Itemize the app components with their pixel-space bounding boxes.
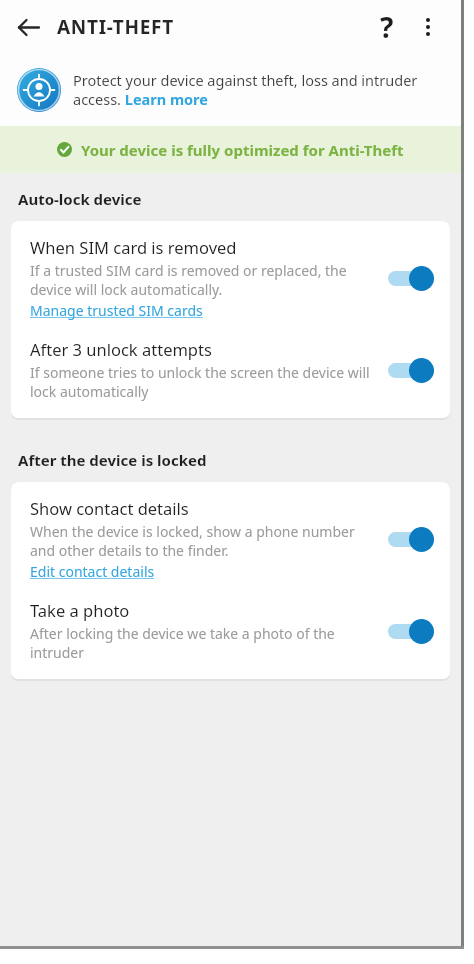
staticText: After the device is locked — [18, 450, 207, 470]
button[interactable]: Toggle on — [384, 521, 438, 557]
staticText: If a trusted SIM card is removed or repl… — [30, 261, 376, 299]
button[interactable]: Toggle on — [384, 352, 438, 388]
button[interactable]: More options — [408, 7, 448, 47]
staticText: When SIM card is removed — [30, 236, 237, 258]
button[interactable]: After 3 unlock attempts — [11, 329, 450, 418]
staticText: Take a photo — [30, 599, 130, 621]
button[interactable]: Help — [365, 5, 409, 49]
staticText: When the device is locked, show a phone … — [30, 522, 376, 560]
staticText: ? — [380, 8, 394, 46]
staticText: After locking the device we take a photo… — [30, 624, 376, 662]
button[interactable]: Back — [7, 6, 49, 48]
button[interactable]: When SIM card is removed — [11, 221, 450, 329]
staticText: If someone tries to unlock the screen th… — [30, 363, 376, 401]
button[interactable]: Take a photo — [11, 590, 450, 679]
staticText: Auto-lock device — [18, 189, 142, 209]
button[interactable]: Manage trusted SIM cards — [30, 301, 203, 320]
staticText: After 3 unlock attempts — [30, 338, 212, 360]
button[interactable]: Edit contact details — [30, 562, 155, 581]
button[interactable]: Toggle on — [384, 260, 438, 296]
staticText: Your device is fully optimized for Anti-… — [81, 140, 404, 160]
staticText: ANTI-THEFT — [57, 14, 174, 40]
button[interactable]: Toggle on — [384, 613, 438, 649]
staticText: Show contact details — [30, 497, 189, 519]
staticText: Protect your device against theft, loss … — [73, 70, 435, 110]
button[interactable]: Show contact details — [11, 482, 450, 590]
